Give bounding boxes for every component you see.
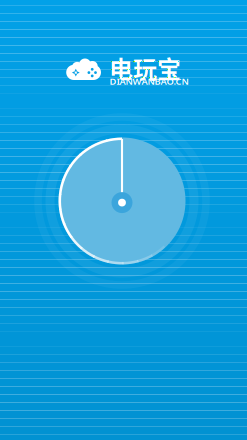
staticText: DIANWANBAO.CN [109,75,188,87]
staticText: 电玩宝 [109,50,181,85]
